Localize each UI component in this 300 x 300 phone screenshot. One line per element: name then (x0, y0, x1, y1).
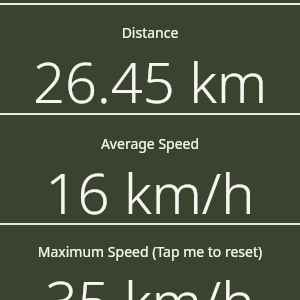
button[interactable]: Maximum Speed (Tap me to reset) (0, 225, 300, 300)
staticText: 35 km/h (0, 262, 300, 300)
staticText: 16 km/h (0, 154, 300, 230)
button[interactable]: Average Speed (0, 115, 300, 223)
button[interactable]: Distance (0, 5, 300, 113)
staticText: Average Speed (0, 134, 300, 153)
staticText: 26.45 km (0, 43, 300, 119)
staticText: Distance (0, 23, 300, 42)
staticText: Maximum Speed (Tap me to reset) (0, 242, 300, 261)
